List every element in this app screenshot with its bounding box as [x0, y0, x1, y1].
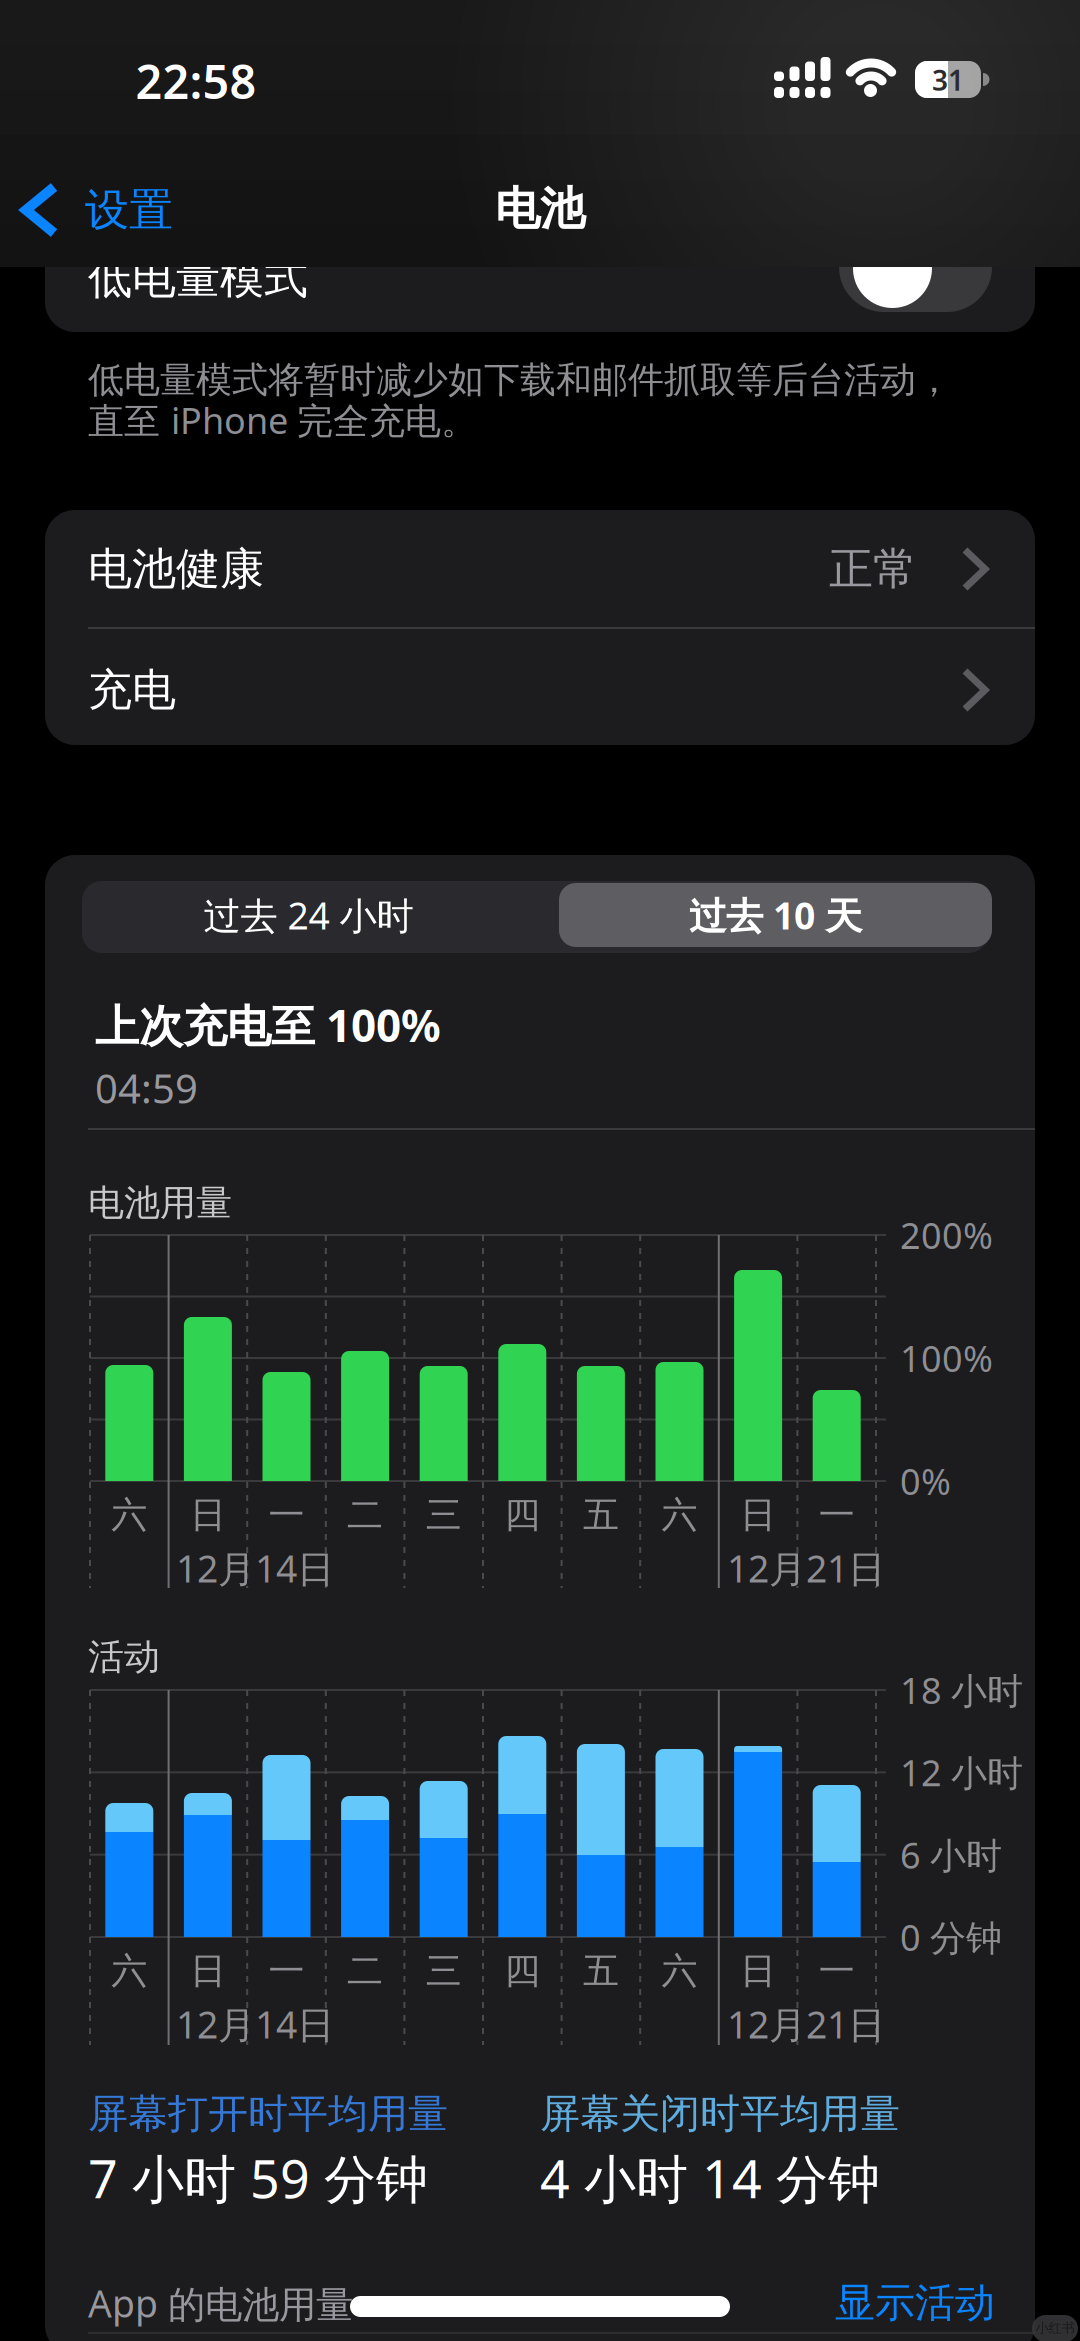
staticText: 正常	[829, 542, 917, 596]
staticText: 0 分钟	[900, 1913, 1002, 1961]
button[interactable]: 过去 10 天	[544, 879, 979, 955]
button[interactable]: 过去 24 小时	[82, 881, 535, 953]
staticText: 直至 iPhone 完全充电。	[88, 396, 477, 444]
staticText: 六	[661, 1949, 697, 1993]
staticText: 小红书	[1035, 2320, 1074, 2336]
staticText: 设置	[85, 183, 173, 237]
staticText: 0%	[900, 1457, 951, 1505]
staticText: 过去 10 天	[689, 890, 862, 940]
staticText: 12月21日	[727, 1999, 885, 2049]
staticText: 6 小时	[900, 1831, 1002, 1879]
staticText: 三	[426, 1493, 462, 1537]
staticText: 电池健康	[88, 542, 264, 596]
staticText: App 的电池用量	[88, 2278, 353, 2328]
staticText: 7 小时 59 分钟	[88, 2143, 428, 2213]
staticText: 电池用量	[88, 1181, 232, 1225]
staticText: 屏幕打开时平均用量	[88, 2089, 448, 2138]
staticText: 一	[819, 1493, 855, 1537]
staticText: 一	[819, 1949, 855, 1993]
staticText: 200%	[900, 1211, 993, 1259]
staticText: 屏幕关闭时平均用量	[540, 2089, 900, 2138]
staticText: 五	[583, 1493, 619, 1537]
button[interactable]: 电池健康	[45, 510, 1035, 627]
staticText: 五	[583, 1949, 619, 1993]
staticText: 12 小时	[900, 1748, 1023, 1796]
staticText: 04:59	[95, 1061, 198, 1114]
staticText: 31	[932, 61, 964, 99]
staticText: 18 小时	[900, 1666, 1023, 1714]
staticText: 过去 24 小时	[203, 890, 413, 940]
staticText: 一	[268, 1493, 304, 1537]
staticText: 四	[504, 1493, 540, 1537]
staticText: 日	[190, 1949, 226, 1993]
staticText: 电池	[495, 181, 585, 237]
staticText: 上次充电至 100%	[95, 996, 441, 1054]
staticText: 12月21日	[727, 1543, 885, 1593]
staticText: 六	[111, 1493, 147, 1537]
staticText: 4 小时 14 分钟	[540, 2143, 880, 2213]
staticText: 12月14日	[176, 1543, 334, 1593]
staticText: 22:58	[135, 50, 256, 112]
button[interactable]: 显示活动	[755, 2263, 995, 2341]
staticText: 一	[268, 1949, 304, 1993]
staticText: 四	[504, 1949, 540, 1993]
staticText: 日	[740, 1949, 776, 1993]
staticText: 三	[426, 1949, 462, 1993]
staticText: 充电	[88, 663, 176, 717]
staticText: 显示活动	[835, 2278, 995, 2327]
staticText: 低电量模式	[88, 251, 308, 305]
staticText: 100%	[900, 1334, 993, 1382]
staticText: 二	[347, 1949, 383, 1993]
button[interactable]: 低电量模式	[839, 222, 992, 312]
staticText: 日	[740, 1493, 776, 1537]
staticText: 六	[111, 1949, 147, 1993]
button[interactable]: 返回设置	[0, 155, 280, 265]
staticText: 12月14日	[176, 1999, 334, 2049]
staticText: 六	[661, 1493, 697, 1537]
button[interactable]: 充电	[45, 629, 1035, 745]
staticText: 低电量模式将暂时减少如下载和邮件抓取等后台活动，	[88, 358, 952, 402]
staticText: 日	[190, 1493, 226, 1537]
staticText: 二	[347, 1493, 383, 1537]
staticText: 活动	[88, 1635, 160, 1679]
